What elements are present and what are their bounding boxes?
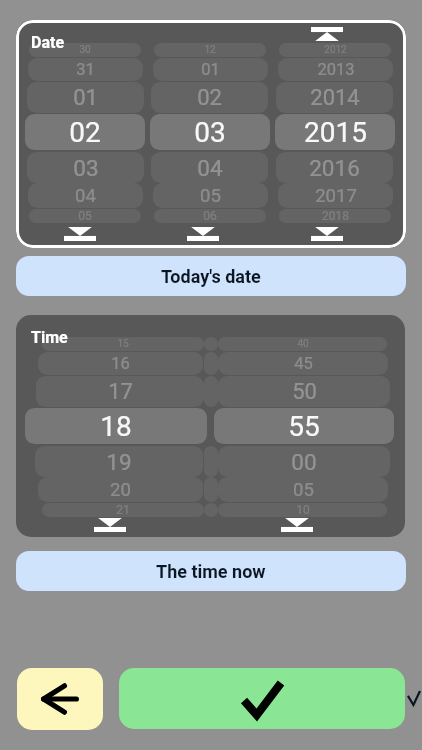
staticText: 16 — [111, 354, 130, 373]
staticText: 18 — [100, 410, 132, 443]
button[interactable] — [204, 352, 218, 375]
staticText: 55 — [288, 410, 320, 443]
button[interactable]: Scroll down — [94, 518, 126, 532]
button[interactable]: 02 — [151, 82, 268, 113]
button[interactable]: 31 — [28, 58, 143, 81]
staticText: 40 — [297, 338, 309, 350]
staticText: 17 — [108, 379, 133, 405]
button[interactable]: 2015 — [275, 114, 395, 150]
staticText: 03 — [194, 116, 226, 149]
button[interactable]: Scroll down — [281, 518, 313, 532]
button[interactable]: Scroll down — [311, 227, 343, 241]
staticText: 12 — [204, 44, 216, 56]
button[interactable]: 01 — [153, 58, 268, 81]
button[interactable]: 02 — [25, 114, 145, 150]
button[interactable]: 2016 — [276, 152, 393, 183]
button[interactable]: Back — [17, 668, 103, 730]
staticText: 00 — [291, 449, 317, 475]
staticText: 2015 — [304, 116, 367, 149]
staticText: 2017 — [315, 185, 357, 207]
button[interactable]: 05 — [153, 183, 268, 208]
staticText: 50 — [292, 379, 317, 405]
button[interactable]: 18 — [25, 408, 207, 444]
button[interactable] — [204, 477, 218, 502]
button[interactable]: 05 — [29, 209, 141, 223]
button[interactable]: 45 — [218, 352, 388, 375]
staticText: 01 — [201, 60, 220, 79]
button[interactable]: 04 — [151, 152, 268, 183]
button[interactable]: 50 — [218, 376, 390, 407]
staticText: 2013 — [317, 60, 355, 79]
button[interactable]: 55 — [214, 408, 394, 444]
staticText: 2016 — [309, 155, 360, 181]
button[interactable]: Scroll down — [187, 227, 219, 241]
button[interactable] — [204, 503, 218, 517]
button[interactable]: 01 — [27, 82, 144, 113]
button[interactable]: 40 — [218, 337, 387, 351]
button[interactable]: 2018 — [279, 209, 391, 223]
button[interactable]: 00 — [218, 446, 390, 477]
staticText: 01 — [73, 85, 98, 111]
button[interactable]: 12 — [154, 43, 266, 57]
staticText: Time — [31, 328, 68, 347]
button[interactable]: 03 — [150, 114, 270, 150]
button[interactable]: 20 — [38, 477, 203, 502]
staticText: 30 — [79, 44, 91, 56]
button[interactable] — [204, 376, 218, 407]
button[interactable]: 16 — [38, 352, 203, 375]
button[interactable]: 2017 — [278, 183, 393, 208]
staticText: Today's date — [161, 266, 261, 287]
staticText: 20 — [110, 479, 131, 501]
staticText: 2018 — [322, 209, 349, 223]
staticText: 15 — [117, 338, 129, 350]
button[interactable]: 21 — [42, 503, 204, 517]
staticText: Date — [31, 33, 65, 52]
staticText: 10 — [296, 503, 310, 517]
button[interactable]: 30 — [29, 43, 141, 57]
button[interactable]: 04 — [28, 183, 143, 208]
staticText: 45 — [294, 354, 313, 373]
button[interactable] — [204, 446, 218, 477]
staticText: 03 — [73, 155, 99, 181]
staticText: 05 — [78, 209, 92, 223]
staticText: 31 — [76, 60, 95, 79]
staticText: 2014 — [310, 85, 360, 111]
button[interactable]: The time now — [16, 551, 406, 591]
staticText: 05 — [293, 479, 314, 501]
button[interactable]: 03 — [27, 152, 144, 183]
staticText: 2012 — [324, 44, 347, 56]
staticText: 05 — [200, 185, 221, 207]
button[interactable]: Scroll up — [311, 27, 343, 41]
staticText: 02 — [69, 116, 101, 149]
button[interactable]: Today's date — [16, 256, 406, 296]
staticText: The time now — [156, 561, 266, 582]
button[interactable]: 10 — [218, 503, 387, 517]
button[interactable]: Scroll down — [64, 227, 96, 241]
button[interactable]: 17 — [36, 376, 204, 407]
button[interactable]: 19 — [35, 446, 203, 477]
button[interactable]: 15 — [42, 337, 204, 351]
button[interactable]: Confirm — [119, 668, 405, 729]
staticText: 21 — [116, 503, 130, 517]
staticText: 06 — [203, 209, 217, 223]
button[interactable]: 2013 — [278, 58, 393, 81]
button[interactable]: 06 — [154, 209, 266, 223]
staticText: 04 — [75, 185, 96, 207]
staticText: 04 — [197, 155, 223, 181]
staticText: 02 — [197, 85, 222, 111]
button[interactable]: 2012 — [279, 43, 391, 57]
button[interactable] — [204, 337, 218, 351]
button[interactable]: 05 — [218, 477, 388, 502]
button[interactable]: 2014 — [276, 82, 393, 113]
staticText: 19 — [106, 449, 132, 475]
